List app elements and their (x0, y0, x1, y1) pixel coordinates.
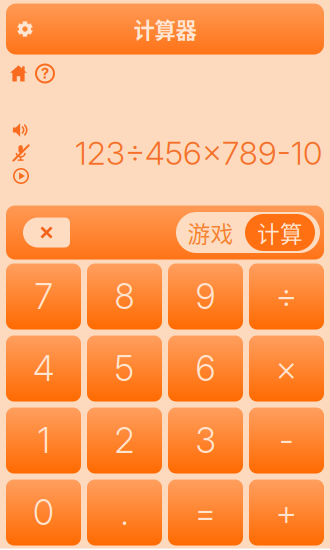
button[interactable]: 1 (6, 407, 81, 473)
button[interactable]: Clear (23, 217, 70, 247)
staticText: 3 (195, 419, 215, 461)
button[interactable]: - (249, 407, 324, 473)
button[interactable]: 5 (87, 335, 162, 401)
button[interactable]: 8 (87, 263, 162, 329)
staticText: ? (41, 65, 49, 82)
staticText: 9 (195, 275, 215, 317)
button[interactable]: . (87, 479, 162, 545)
button[interactable]: 计算器 (6, 3, 324, 54)
staticText: 5 (114, 347, 134, 389)
button[interactable]: Help (36, 64, 54, 82)
button[interactable]: 7 (6, 263, 81, 329)
button[interactable]: Play (11, 164, 31, 187)
button[interactable]: 计算 (245, 212, 320, 253)
button[interactable]: = (168, 479, 243, 545)
button[interactable]: ÷ (249, 263, 324, 329)
staticText: 计算器 (133, 14, 196, 44)
button[interactable]: Home (10, 64, 27, 82)
staticText: 6 (195, 347, 215, 389)
staticText: 4 (33, 347, 54, 389)
staticText: 8 (114, 275, 134, 317)
staticText: + (275, 491, 297, 533)
button[interactable]: Volume (11, 118, 31, 141)
staticText: = (194, 491, 216, 533)
staticText: 1 (37, 419, 49, 461)
button[interactable]: 0 (6, 479, 81, 545)
staticText: 2 (114, 419, 134, 461)
button[interactable]: 游戏 (176, 212, 245, 253)
staticText: × (275, 347, 297, 389)
button[interactable]: 3 (168, 407, 243, 473)
button[interactable]: 9 (168, 263, 243, 329)
staticText: - (279, 419, 294, 461)
staticText: 123÷456×789-10 (75, 134, 322, 172)
staticText: 计算 (257, 216, 303, 249)
button[interactable]: Mute microphone (11, 141, 31, 164)
staticText: 7 (34, 275, 52, 317)
button[interactable]: + (249, 479, 324, 545)
staticText: 游戏 (187, 216, 233, 249)
button[interactable]: 2 (87, 407, 162, 473)
button[interactable]: 4 (6, 335, 81, 401)
staticText: ÷ (275, 275, 297, 317)
button[interactable]: × (249, 335, 324, 401)
staticText: . (120, 491, 128, 533)
button[interactable]: 6 (168, 335, 243, 401)
staticText: 0 (33, 491, 54, 533)
